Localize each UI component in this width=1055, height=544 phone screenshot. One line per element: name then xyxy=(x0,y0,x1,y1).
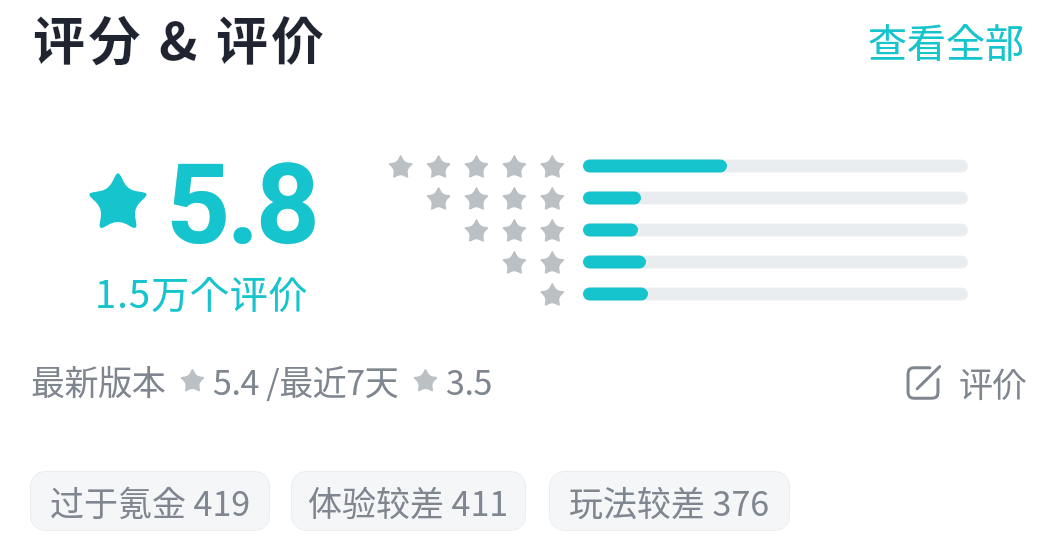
other: Rating distribution xyxy=(0,0,1055,544)
button[interactable]: 玩法较差 376 xyxy=(549,471,790,531)
staticText: 评价 xyxy=(959,358,1027,402)
button[interactable]: 查看全部 xyxy=(858,0,1035,72)
staticText: 最新版本 xyxy=(31,356,166,405)
staticText: 过于氪金 419 xyxy=(50,477,251,526)
staticText: 3.5 xyxy=(446,356,492,405)
staticText: 5.4 /最近7天 xyxy=(213,356,399,405)
button[interactable]: 体验较差 411 xyxy=(291,471,526,531)
staticText: 体验较差 411 xyxy=(308,477,509,526)
staticText: 1.5万个评价 xyxy=(95,264,309,319)
staticText: 玩法较差 376 xyxy=(569,477,770,526)
button[interactable]: Write review xyxy=(900,352,1033,408)
staticText: 评分 & 评价 xyxy=(33,0,327,72)
other: Write review xyxy=(906,366,940,400)
staticText: 5.8 xyxy=(166,139,317,270)
button[interactable]: 过于氪金 419 xyxy=(30,471,270,531)
staticText: 查看全部 xyxy=(868,12,1025,66)
